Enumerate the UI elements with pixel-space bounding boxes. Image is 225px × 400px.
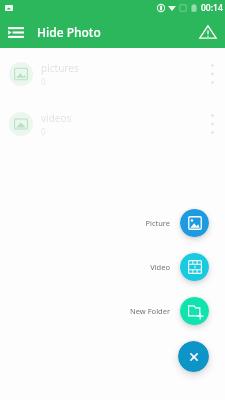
button[interactable]: Picture <box>112 209 209 237</box>
button[interactable]: New Folder <box>112 297 209 325</box>
button[interactable]: Close menu <box>178 341 209 372</box>
button[interactable]: Video <box>112 253 209 281</box>
staticText: Hide Photo <box>37 24 101 40</box>
staticText: 0 <box>41 76 46 87</box>
button[interactable]: More options <box>199 61 225 87</box>
staticText: 00:14 <box>201 2 223 14</box>
staticText: pictures <box>41 61 79 75</box>
staticText: New Folder <box>112 306 170 316</box>
button[interactable]: videos <box>0 99 225 149</box>
staticText: 0 <box>41 126 46 137</box>
button[interactable]: More options <box>199 111 225 137</box>
staticText: Video <box>112 262 170 272</box>
button[interactable]: Open navigation menu <box>2 18 30 46</box>
staticText: videos <box>41 111 72 125</box>
button[interactable]: Warning <box>194 18 222 46</box>
button[interactable]: pictures <box>0 49 225 99</box>
staticText: Picture <box>112 218 170 228</box>
